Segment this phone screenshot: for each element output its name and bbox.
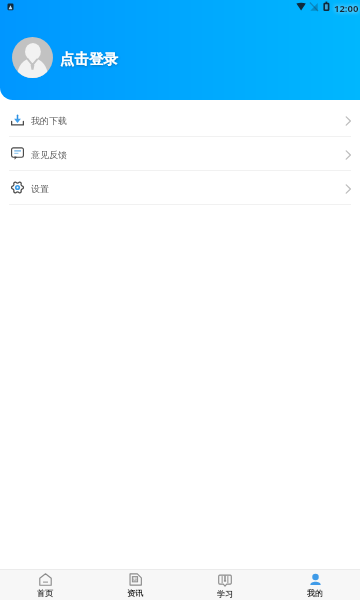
button[interactable]: 我的下载 [0,103,360,136]
staticText: 我的下载 [31,115,67,126]
staticText: 学习 [217,589,233,599]
other: 学习 [218,573,232,587]
staticText: 首页 [37,588,53,598]
staticText: 意见反馈 [31,149,67,160]
button[interactable]: 意见反馈 [0,137,360,170]
staticText: 设置 [31,183,49,194]
button[interactable]: 我的 [270,570,360,600]
button[interactable]: 资讯 [90,570,180,600]
button[interactable]: 点击登录 [0,16,360,98]
staticText: 资讯 [127,588,143,598]
staticText: 点击登录 [60,50,118,68]
staticText: 12:00 [334,2,359,15]
staticText: 我的 [307,588,323,598]
button[interactable]: 学习 [180,570,270,600]
button[interactable]: 设置 [0,171,360,204]
other: 首页 [39,573,52,586]
other: 资讯 [129,573,142,586]
button[interactable]: 首页 [0,570,90,600]
other: 我的 [309,573,322,586]
